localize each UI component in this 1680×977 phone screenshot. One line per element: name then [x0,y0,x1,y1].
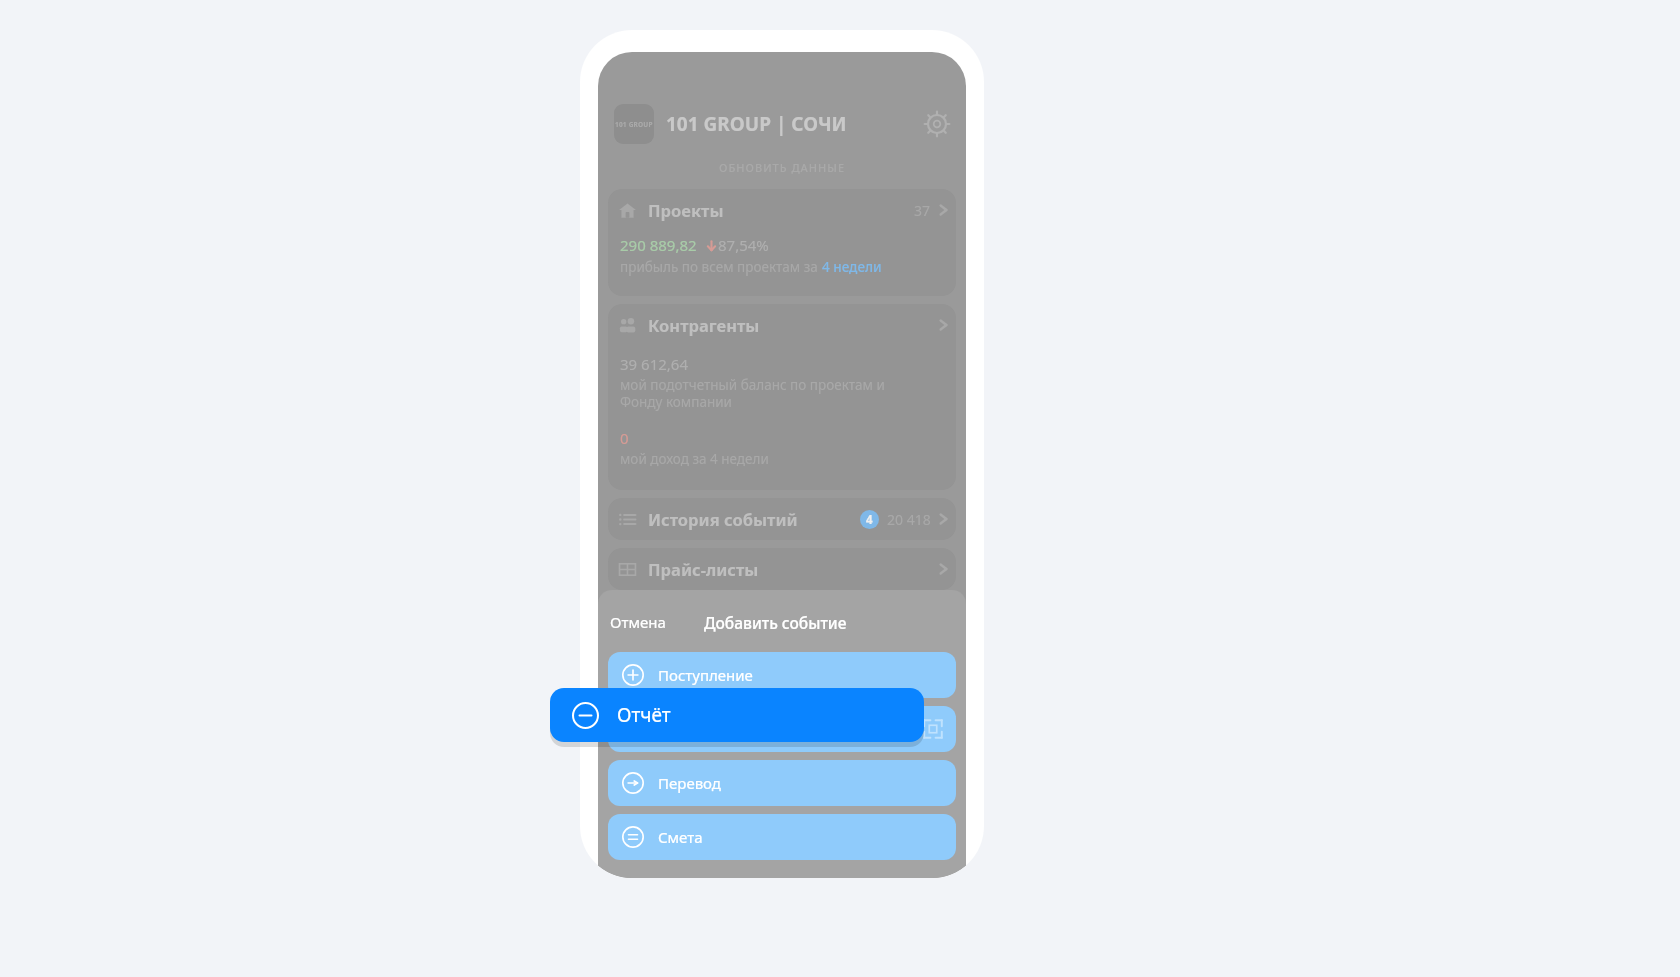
staticText: Контрагенты [648,314,939,336]
staticText: прибыль по всем проектам за [620,258,822,276]
staticText: Добавить событие [704,612,847,633]
staticText: 20 418 [887,510,931,529]
button[interactable]: Проекты [608,189,956,296]
button[interactable]: Отчёт [608,706,956,752]
button[interactable]: Смета [608,814,956,860]
button[interactable]: Scan [920,716,946,742]
staticText: 37 [914,201,931,220]
staticText: Проекты [648,199,914,221]
button[interactable]: Отчёт [550,688,924,742]
button[interactable]: Settings [924,111,950,137]
button[interactable]: Отмена [606,608,670,636]
staticText: мой подотчетный баланс по проектам и Фон… [620,376,885,411]
staticText: 4 [866,512,873,528]
staticText: Отмена [610,612,666,632]
button[interactable]: Перевод [608,760,956,806]
staticText: 39 612,64 [620,354,688,374]
staticText: Смета [658,827,703,847]
button[interactable]: Контрагенты [608,304,956,490]
button[interactable]: Поступление [608,652,956,698]
staticText: 101 GROUP | СОЧИ [666,111,924,137]
staticText: ОБНОВИТЬ ДАННЫЕ [719,160,846,175]
staticText: Перевод [658,773,721,793]
button[interactable]: История событий [608,498,956,540]
staticText: 87,54% [718,235,769,255]
staticText: 0 [620,428,629,448]
staticText: 290 889,82 [620,235,697,255]
staticText: Отчёт [617,702,671,728]
button[interactable]: Прайс-листы [608,548,956,590]
staticText: мой доход за 4 недели [620,450,769,468]
staticText: История событий [648,508,860,530]
button[interactable]: 4 недели [822,258,882,276]
staticText: 101 GROUP [615,120,653,129]
staticText: Поступление [658,665,753,685]
staticText: Прайс-листы [648,558,939,580]
staticText: Отчёт [658,719,920,739]
